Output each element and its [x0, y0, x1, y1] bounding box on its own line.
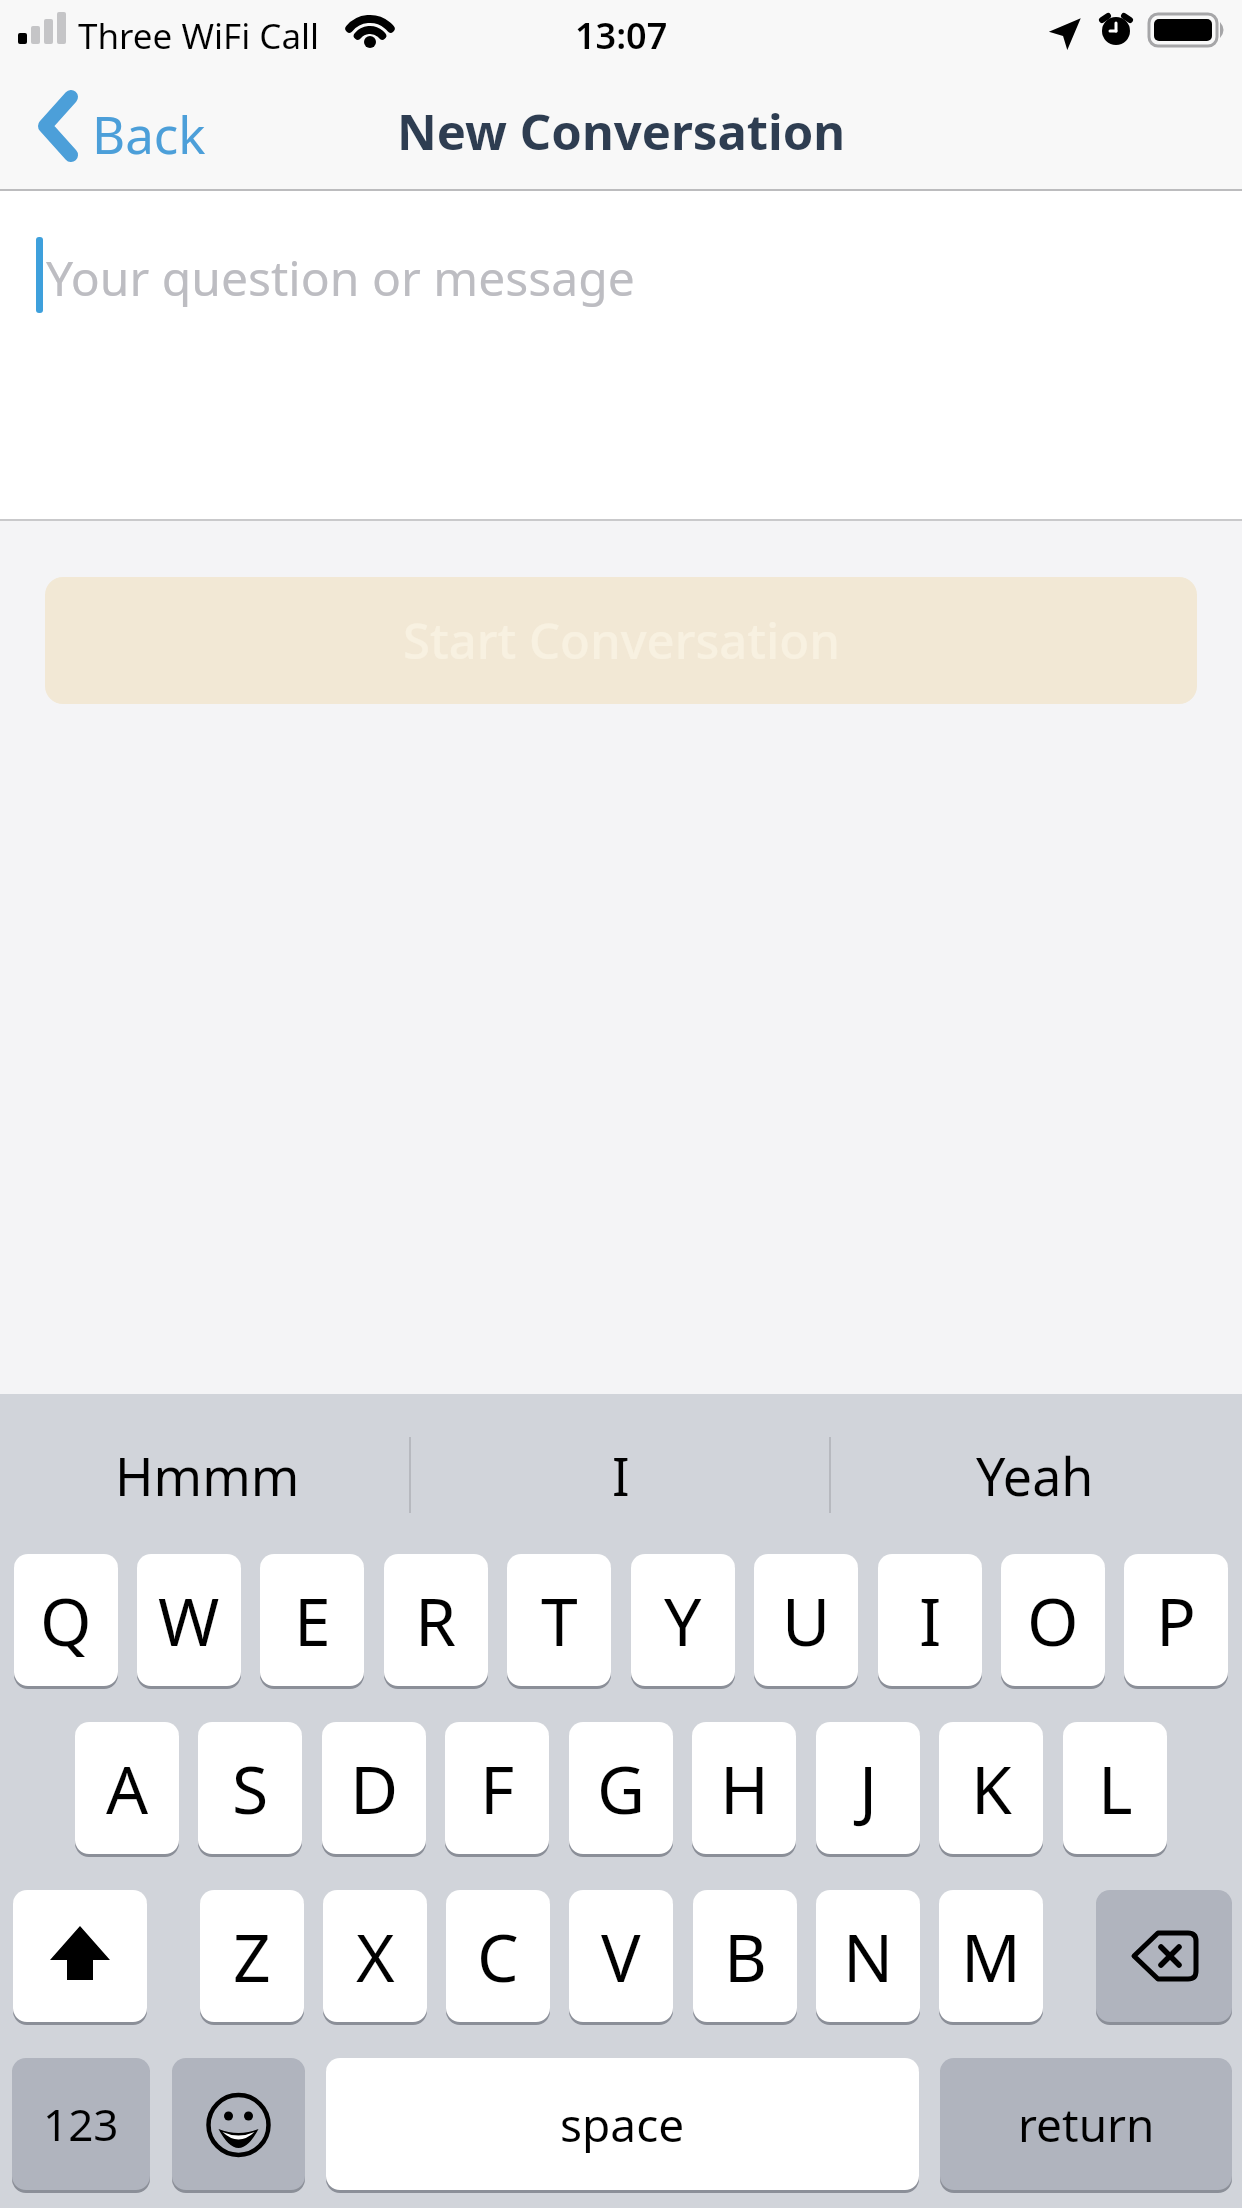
button[interactable]: M	[939, 1890, 1043, 2022]
button[interactable]: W	[137, 1554, 241, 1686]
button[interactable]: O	[1001, 1554, 1105, 1686]
staticText: New Conversation	[397, 98, 846, 165]
staticText: 123	[43, 2094, 119, 2154]
staticText: T	[541, 1575, 578, 1665]
button[interactable]: Q	[14, 1554, 118, 1686]
staticText: J	[859, 1743, 878, 1833]
button[interactable]: U	[754, 1554, 858, 1686]
staticText: G	[597, 1743, 646, 1833]
button[interactable]: 123	[12, 2058, 150, 2190]
staticText: Yeah	[976, 1440, 1094, 1511]
staticText: L	[1098, 1743, 1133, 1833]
staticText: B	[724, 1911, 767, 2001]
button[interactable]: F	[445, 1722, 549, 1854]
button[interactable]: I	[878, 1554, 982, 1686]
button[interactable]: J	[816, 1722, 920, 1854]
button[interactable]: V	[569, 1890, 673, 2022]
button[interactable]	[40, 90, 260, 170]
button[interactable]: E	[260, 1554, 364, 1686]
staticText: Your question or message	[46, 245, 635, 310]
button[interactable]: Yeah	[828, 1437, 1242, 1513]
staticText: Y	[664, 1575, 702, 1665]
staticText: Back	[92, 99, 206, 168]
staticText: C	[477, 1911, 519, 2001]
button[interactable]	[13, 1890, 147, 2022]
button[interactable]: X	[323, 1890, 427, 2022]
staticText: V	[601, 1911, 641, 2001]
staticText: 13:07	[575, 11, 668, 60]
staticText: I	[919, 1575, 942, 1665]
staticText: Z	[233, 1911, 271, 2001]
staticText: U	[782, 1575, 831, 1665]
staticText: D	[350, 1743, 399, 1833]
button[interactable]	[1096, 1890, 1232, 2022]
button[interactable]	[172, 2058, 305, 2190]
button[interactable]: T	[507, 1554, 611, 1686]
staticText: P	[1156, 1575, 1196, 1665]
staticText: O	[1027, 1575, 1079, 1665]
staticText: M	[961, 1911, 1021, 2001]
button[interactable]: Y	[631, 1554, 735, 1686]
button[interactable]: R	[384, 1554, 488, 1686]
staticText: A	[106, 1743, 149, 1833]
button[interactable]: K	[939, 1722, 1043, 1854]
staticText: H	[720, 1743, 769, 1833]
button[interactable]: I	[414, 1437, 828, 1513]
button[interactable]: Z	[200, 1890, 304, 2022]
button[interactable]: L	[1063, 1722, 1167, 1854]
button[interactable]: S	[198, 1722, 302, 1854]
staticText: return	[1018, 2093, 1155, 2156]
button[interactable]: space	[326, 2058, 919, 2190]
staticText: Start Conversation	[403, 607, 840, 674]
staticText: F	[480, 1743, 515, 1833]
button[interactable]: N	[816, 1890, 920, 2022]
button[interactable]: P	[1124, 1554, 1228, 1686]
staticText: E	[294, 1575, 331, 1665]
staticText: K	[971, 1743, 1012, 1833]
staticText: Hmmm	[115, 1440, 300, 1511]
button[interactable]: G	[569, 1722, 673, 1854]
button[interactable]: Hmmm	[0, 1437, 414, 1513]
staticText: X	[356, 1911, 395, 2001]
button[interactable]: A	[75, 1722, 179, 1854]
button[interactable]: H	[692, 1722, 796, 1854]
staticText: W	[158, 1575, 220, 1665]
staticText: space	[560, 2093, 685, 2156]
button[interactable]: return	[940, 2058, 1232, 2190]
button[interactable]: Your question or message	[0, 191, 1242, 519]
staticText: Three WiFi Call	[78, 12, 320, 60]
staticText: R	[415, 1575, 457, 1665]
staticText: Q	[40, 1575, 92, 1665]
button[interactable]: D	[322, 1722, 426, 1854]
button[interactable]: C	[446, 1890, 550, 2022]
staticText: S	[232, 1743, 269, 1833]
button[interactable]: B	[693, 1890, 797, 2022]
staticText: N	[843, 1911, 894, 2001]
staticText: I	[612, 1440, 630, 1511]
